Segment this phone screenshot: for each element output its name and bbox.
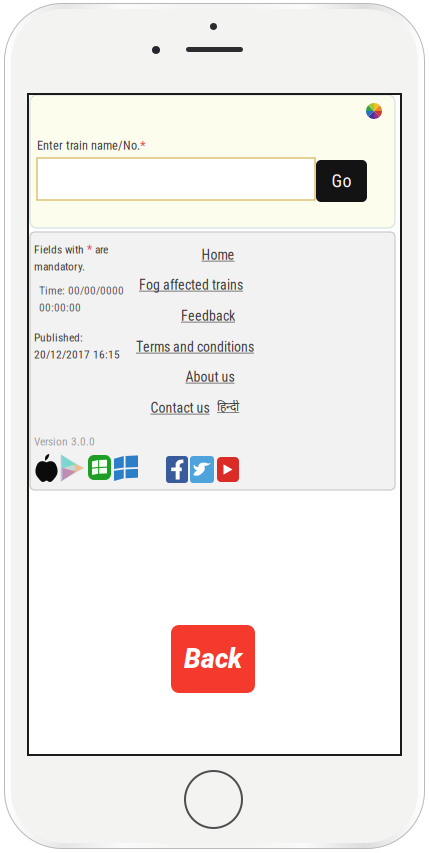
staticText: About us [185, 369, 234, 385]
button[interactable]: Fog affected trains [139, 277, 243, 293]
button[interactable]: Twitter [190, 456, 214, 483]
button[interactable]: Facebook [166, 456, 188, 483]
staticText: are [92, 243, 108, 256]
staticText: Version 3.0.0 [34, 435, 95, 448]
button[interactable]: हिन्दी [217, 400, 239, 416]
staticText: Fields with [34, 243, 87, 256]
button[interactable]: App Store [36, 454, 57, 482]
staticText: * [87, 242, 92, 257]
staticText: Published: [34, 331, 83, 344]
button[interactable]: Contact us [150, 400, 209, 416]
staticText: Terms and conditions [136, 339, 254, 355]
staticText: mandatory. [34, 260, 85, 273]
staticText: Back [184, 643, 242, 675]
button[interactable]: Google Play [59, 454, 84, 482]
button[interactable]: Windows Phone Store [88, 455, 111, 480]
button[interactable]: YouTube [217, 457, 239, 482]
staticText: हिन्दी [217, 400, 239, 416]
button[interactable]: Terms and conditions [136, 339, 254, 355]
button[interactable]: Home [201, 247, 234, 263]
button[interactable]: Go [316, 160, 367, 202]
button[interactable]: Feedback [181, 308, 235, 324]
button[interactable]: Windows Store [114, 456, 138, 481]
staticText: Enter train name/No. [37, 138, 140, 153]
staticText: Feedback [181, 308, 235, 324]
button[interactable]: Back [171, 625, 255, 693]
staticText: Fog affected trains [139, 277, 243, 293]
staticText: Home [201, 247, 234, 263]
staticText: * [140, 138, 146, 153]
staticText: 00:00:00 [39, 301, 81, 314]
button[interactable]: About us [185, 369, 234, 385]
staticText: Contact us [150, 400, 209, 416]
staticText: Go [331, 170, 351, 192]
staticText: 20/12/2017 16:15 [34, 348, 120, 361]
staticText: Time: 00/00/0000 [39, 284, 124, 297]
